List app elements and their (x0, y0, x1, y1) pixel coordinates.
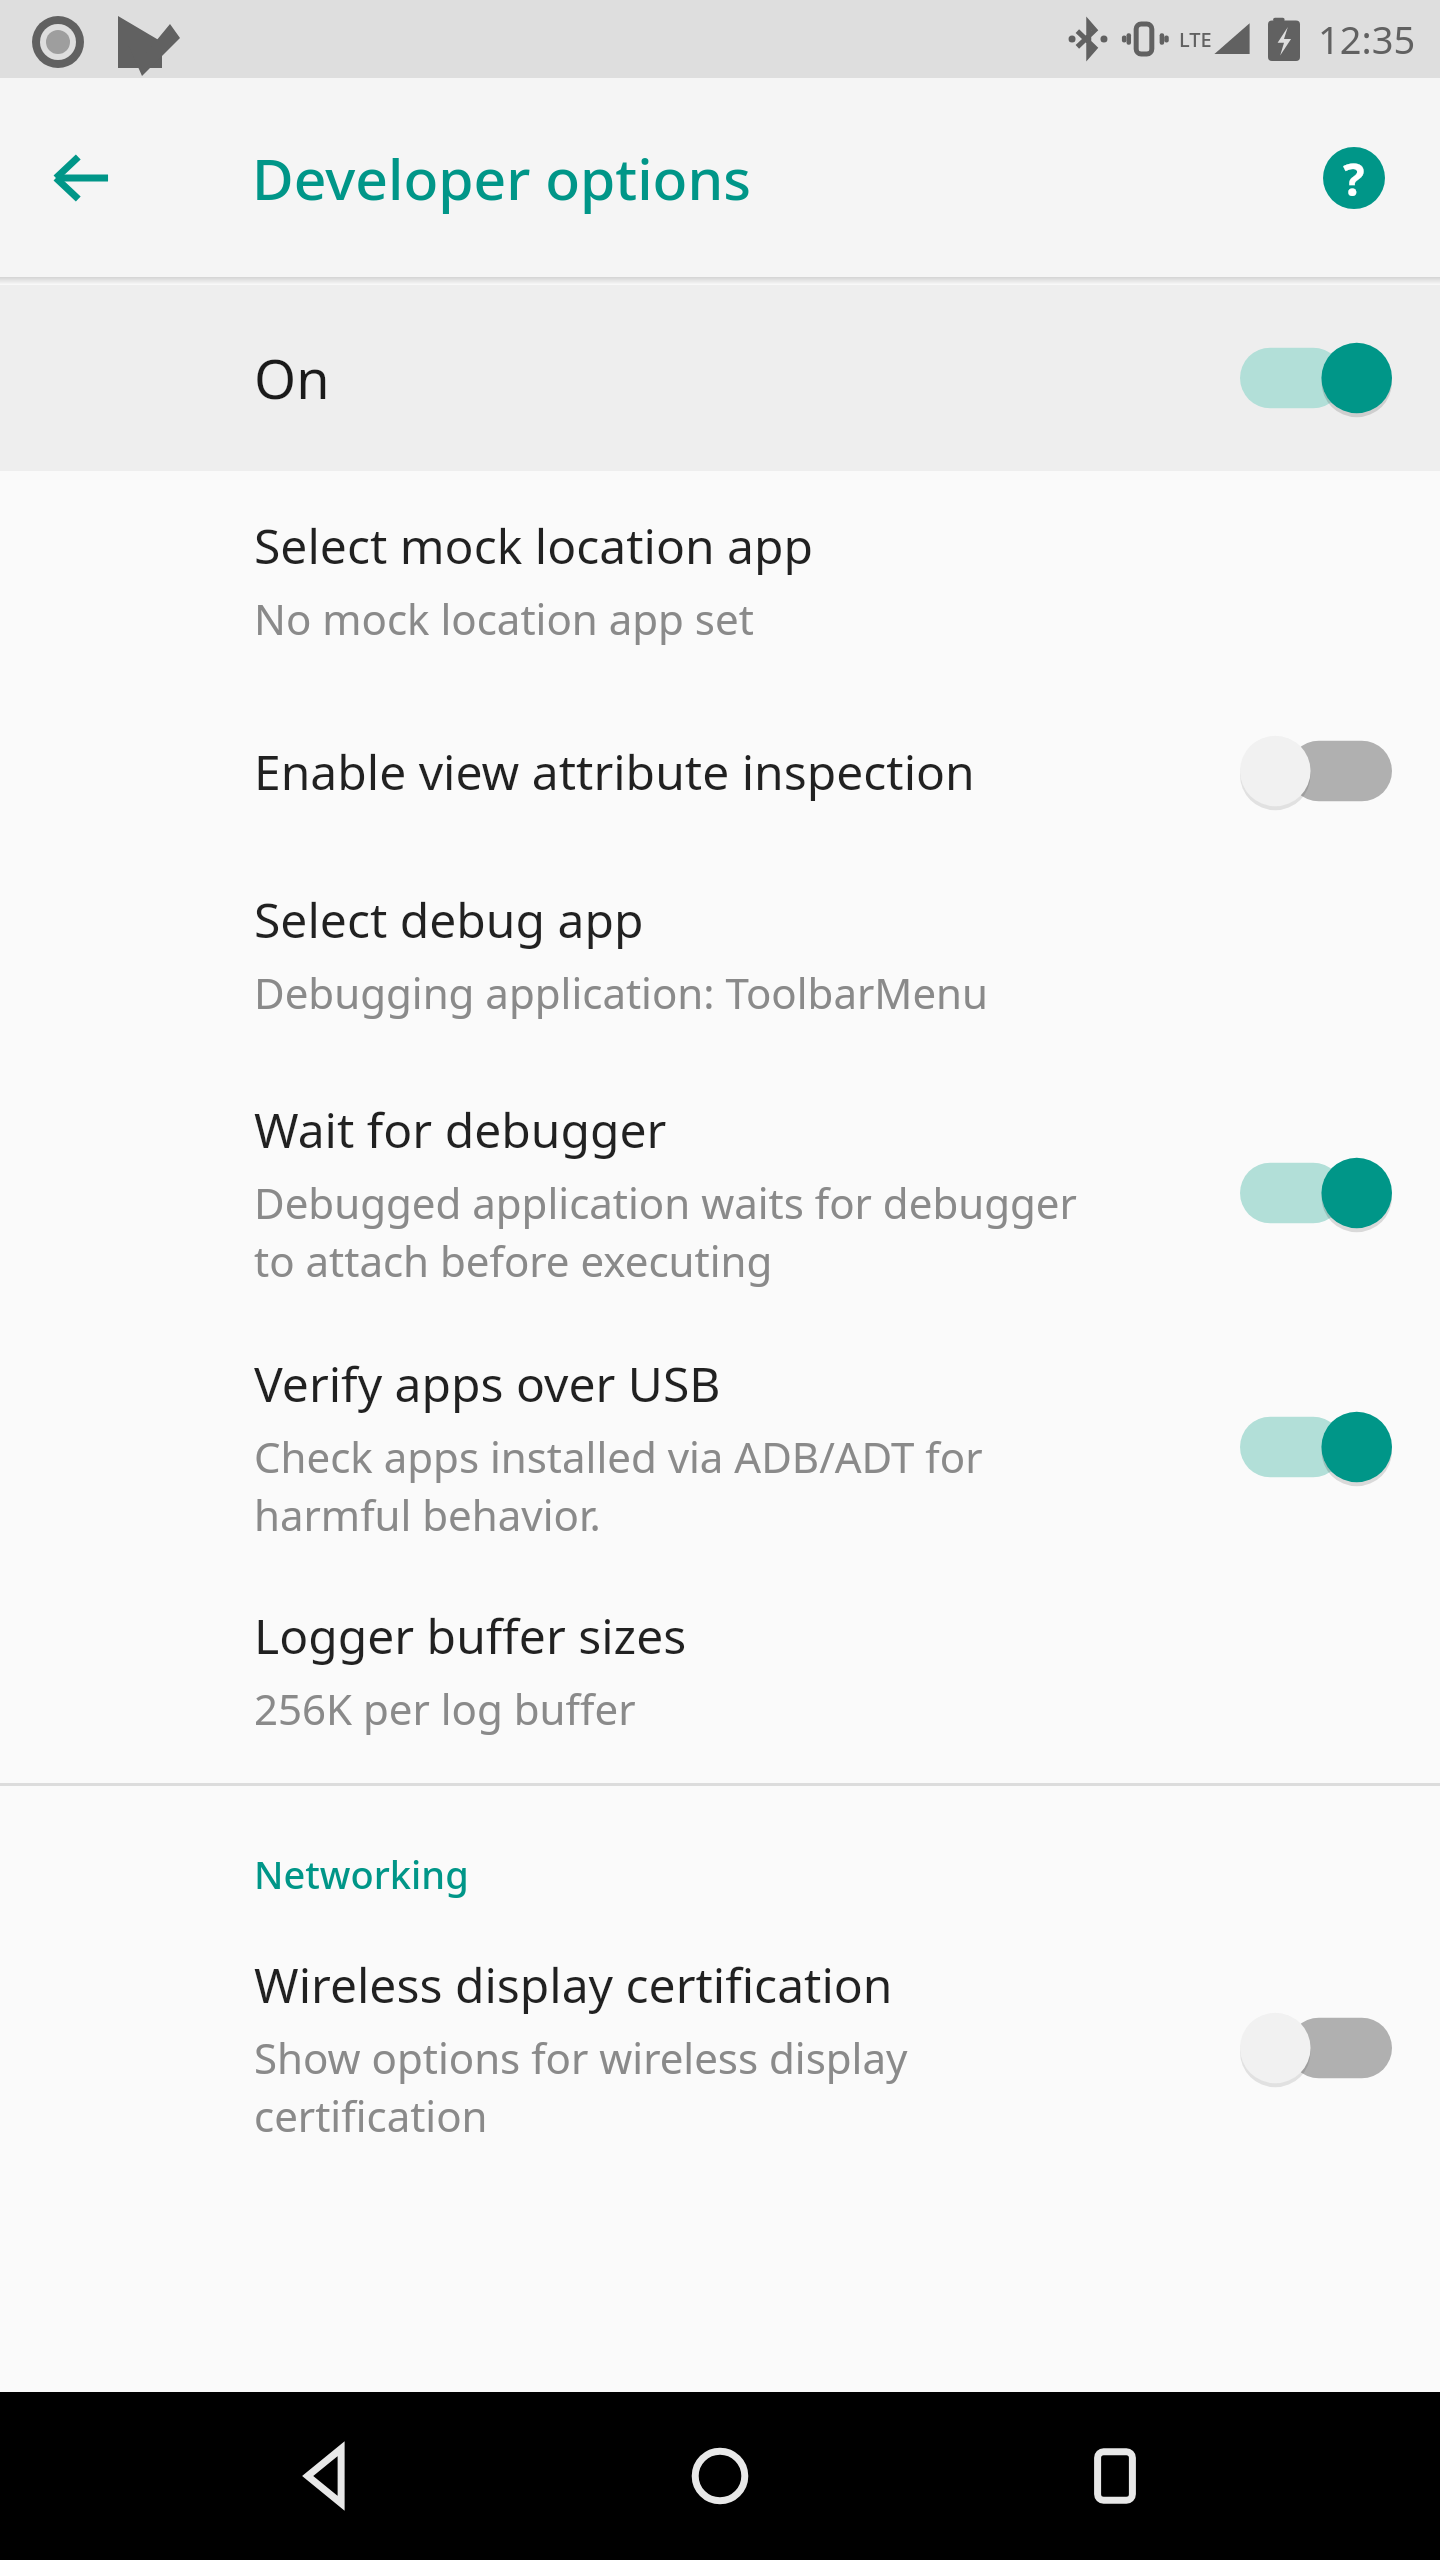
staticText: No mock location app set (254, 590, 754, 647)
button[interactable]: Wait for debugger (0, 1063, 1440, 1321)
button[interactable]: Logger buffer sizes (0, 1575, 1440, 1783)
button[interactable]: Toggle on (1240, 1151, 1392, 1235)
button[interactable]: Toggle on (1240, 1405, 1392, 1489)
staticText: Debugging application: ToolbarMenu (254, 964, 988, 1021)
staticText: Select debug app (254, 887, 644, 952)
button[interactable]: Help (1306, 130, 1402, 226)
staticText: On (254, 341, 330, 415)
button[interactable]: Home (650, 2406, 790, 2546)
staticText: Check apps installed via ADB/ADT for har… (254, 1428, 983, 1543)
staticText: Wait for debugger (254, 1097, 667, 1162)
staticText: Enable view attribute inspection (254, 739, 975, 804)
staticText: 12:35 (1318, 13, 1416, 65)
staticText: 256K per log buffer (254, 1680, 636, 1737)
staticText: Wireless display certification (254, 1952, 893, 2017)
staticText: Show options for wireless display certif… (254, 2029, 908, 2144)
button[interactable]: Back (255, 2406, 395, 2546)
button[interactable]: Toggle off (1240, 729, 1392, 813)
button[interactable]: Recents (1045, 2406, 1185, 2546)
staticText: Networking (254, 1848, 469, 1900)
button[interactable]: Enable view attribute inspection (0, 691, 1440, 851)
staticText: Verify apps over USB (254, 1351, 721, 1416)
button[interactable]: Verify apps over USB (0, 1321, 1440, 1575)
button[interactable]: Back (30, 126, 134, 230)
staticText: Developer options (252, 139, 751, 217)
button[interactable]: Toggle off (1240, 2006, 1392, 2090)
staticText: Select mock location app (254, 513, 814, 578)
staticText: LTE (1179, 26, 1212, 53)
button[interactable]: Wireless display certification (0, 1952, 1440, 2164)
button[interactable]: Toggle on (1240, 336, 1392, 420)
staticText: Logger buffer sizes (254, 1603, 687, 1668)
staticText: Debugged application waits for debugger … (254, 1174, 1077, 1289)
button[interactable]: On (0, 285, 1440, 471)
staticText: ? (1343, 148, 1365, 209)
button[interactable]: Select debug app (0, 851, 1440, 1063)
button[interactable]: Select mock location app (0, 471, 1440, 691)
